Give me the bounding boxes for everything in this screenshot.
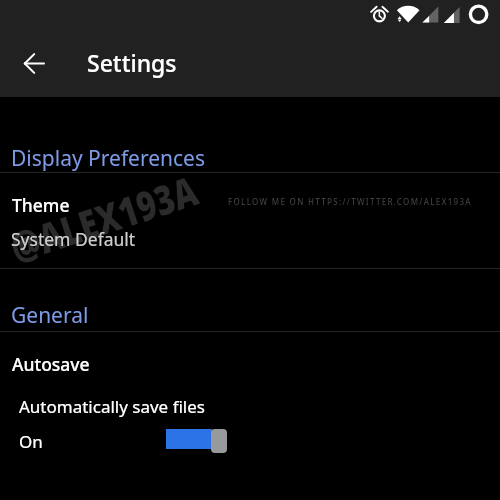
staticText: General xyxy=(11,301,89,330)
staticText: System Default xyxy=(11,227,136,251)
staticText: Theme xyxy=(12,193,70,217)
staticText: Automatically save files xyxy=(19,395,205,418)
staticText: On xyxy=(19,430,43,453)
staticText: Settings xyxy=(87,47,177,78)
staticText: @ALEX193A xyxy=(3,162,205,275)
staticText: FOLLOW ME ON HTTPS://TWITTER.COM/ALEX193… xyxy=(228,196,472,207)
button[interactable]: Automatically save files xyxy=(0,386,500,468)
button[interactable]: Theme xyxy=(0,173,500,268)
button[interactable]: Automatically save files toggle xyxy=(163,425,227,455)
staticText: Display Preferences xyxy=(11,144,206,173)
button[interactable]: Back xyxy=(14,43,55,84)
staticText: Autosave xyxy=(12,352,90,376)
